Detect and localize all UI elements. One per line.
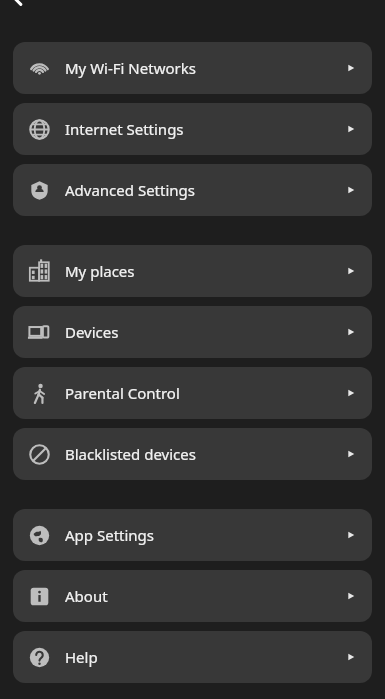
staticText: Advanced Settings [65,180,344,200]
button[interactable]: App Settings [13,509,372,561]
staticText: My Wi-Fi Networks [65,58,344,78]
staticText: About [65,586,344,606]
button[interactable]: Advanced Settings [13,164,372,216]
staticText: Blacklisted devices [65,444,344,464]
button[interactable]: About [13,570,372,622]
button[interactable]: Parental Control [13,367,372,419]
staticText: My places [65,261,344,281]
staticText: Help [65,647,344,667]
button[interactable]: Help [13,631,372,683]
staticText: Devices [65,322,344,342]
button[interactable]: Back [8,0,48,20]
button[interactable]: Devices [13,306,372,358]
button[interactable]: Internet Settings [13,103,372,155]
staticText: Parental Control [65,383,344,403]
button[interactable]: My places [13,245,372,297]
staticText: Internet Settings [65,119,344,139]
button[interactable]: My Wi-Fi Networks [13,42,372,94]
staticText: App Settings [65,525,344,545]
button[interactable]: Blacklisted devices [13,428,372,480]
